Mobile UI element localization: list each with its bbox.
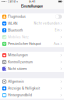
staticText: Hintergrundbild: [8, 93, 32, 97]
button[interactable]: Nicht stören: [0, 65, 64, 72]
staticText: Mobiles Netz: [8, 35, 29, 39]
staticText: Ein: [55, 28, 60, 32]
button[interactable]: Allgemein: [0, 78, 64, 85]
staticText: Aus: [54, 42, 60, 46]
button[interactable]: Bluetooth: [0, 27, 64, 34]
button[interactable]: Hintergrundbild: [0, 92, 64, 99]
staticText: Persönlicher Hotspot: [8, 42, 41, 46]
button[interactable]: Mitteilungen: [0, 52, 64, 59]
button[interactable]: Flugmodus: [0, 13, 64, 20]
staticText: Carrier: [8, 0, 16, 3]
staticText: Allgemein: [8, 80, 24, 83]
staticText: WLAN: [8, 22, 17, 25]
staticText: Mitteilungen: [8, 53, 28, 57]
staticText: Anzeige & Helligkeit: [8, 86, 40, 90]
staticText: Nicht verbunden: [34, 22, 60, 25]
staticText: Einstellungen: [21, 4, 43, 8]
staticText: Bluetooth: [8, 28, 23, 32]
button[interactable]: Persönlicher Hotspot: [0, 40, 64, 47]
button[interactable]: Kontrollzentrum: [0, 59, 64, 65]
button[interactable]: Mobiles Netz: [0, 34, 64, 40]
button[interactable]: Anzeige & Helligkeit: [0, 85, 64, 92]
staticText: Kontrollzentrum: [8, 60, 33, 64]
button[interactable]: WLAN: [0, 20, 64, 27]
staticText: Nicht stören: [8, 67, 27, 71]
staticText: Flugmodus: [8, 15, 26, 19]
staticText: 9:41: [29, 0, 35, 3]
